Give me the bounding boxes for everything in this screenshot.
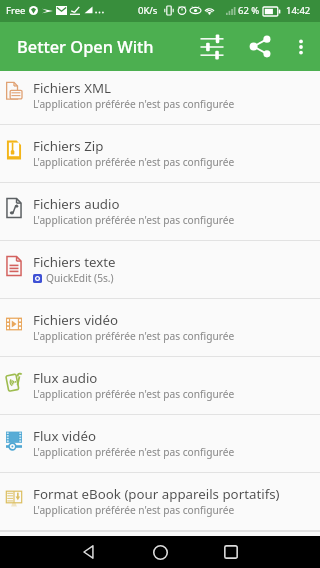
staticText: Free: [6, 4, 26, 17]
button[interactable]: Fichiers audio: [0, 183, 320, 241]
button[interactable]: Fichiers XML: [0, 71, 320, 125]
button[interactable]: Home: [132, 536, 188, 568]
staticText: L'application préférée n'est pas configu…: [33, 387, 235, 401]
button[interactable]: Share: [234, 22, 280, 71]
staticText: Fichiers audio: [33, 195, 120, 213]
staticText: L'application préférée n'est pas configu…: [33, 213, 235, 227]
staticText: Fichiers vidéo: [33, 311, 119, 329]
staticText: Fichiers Zip: [33, 137, 104, 155]
staticText: Flux vidéo: [33, 427, 96, 445]
staticText: QuickEdit (5s.): [46, 271, 114, 285]
staticText: 0K/s: [138, 4, 158, 17]
staticText: Flux audio: [33, 369, 98, 387]
staticText: 14:42: [286, 4, 311, 17]
staticText: 62 %: [238, 4, 260, 17]
button[interactable]: Format eBook (pour appareils portatifs): [0, 473, 320, 531]
staticText: Better Open With: [17, 35, 154, 57]
button[interactable]: Fichiers Zip: [0, 125, 320, 183]
button[interactable]: Back: [61, 536, 117, 568]
button[interactable]: Flux vidéo: [0, 415, 320, 473]
button[interactable]: More options: [280, 22, 320, 71]
staticText: Fichiers XML: [33, 79, 111, 97]
staticText: L'application préférée n'est pas configu…: [33, 503, 235, 517]
staticText: L'application préférée n'est pas configu…: [33, 97, 235, 111]
staticText: L'application préférée n'est pas configu…: [33, 329, 235, 343]
button[interactable]: Fichiers vidéo: [0, 299, 320, 357]
staticText: Fichiers texte: [33, 253, 116, 271]
staticText: L'application préférée n'est pas configu…: [33, 155, 235, 169]
button[interactable]: Flux audio: [0, 357, 320, 415]
staticText: L'application préférée n'est pas configu…: [33, 445, 235, 459]
button[interactable]: Fichiers texte: [0, 241, 320, 299]
staticText: Format eBook (pour appareils portatifs): [33, 485, 280, 503]
button[interactable]: Recents: [203, 536, 259, 568]
button[interactable]: Filters: [188, 22, 234, 71]
